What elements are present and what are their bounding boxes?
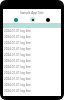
staticText: Sample App Title bbox=[20, 11, 44, 15]
staticText: 2024-01-01 log line bbox=[4, 47, 31, 51]
button[interactable] bbox=[14, 18, 18, 22]
staticText: 2024-01-01 log line bbox=[4, 83, 31, 87]
staticText: 2024-01-01 log line bbox=[4, 71, 31, 75]
button[interactable] bbox=[46, 18, 50, 22]
staticText: 2024-01-01 log line bbox=[4, 77, 31, 81]
staticText: 2024-01-01 log line bbox=[4, 29, 31, 33]
button[interactable] bbox=[30, 17, 35, 22]
staticText: 2024-01-01 log line bbox=[4, 89, 31, 93]
staticText: 2024-01-01 log line bbox=[4, 41, 31, 45]
staticText: 2024-01-01 log line bbox=[4, 53, 31, 57]
staticText: 2024-01-01 log line bbox=[4, 59, 31, 63]
staticText: 2024-01-01 log line bbox=[4, 65, 31, 69]
staticText: 2024-01-01 log line bbox=[4, 35, 31, 39]
